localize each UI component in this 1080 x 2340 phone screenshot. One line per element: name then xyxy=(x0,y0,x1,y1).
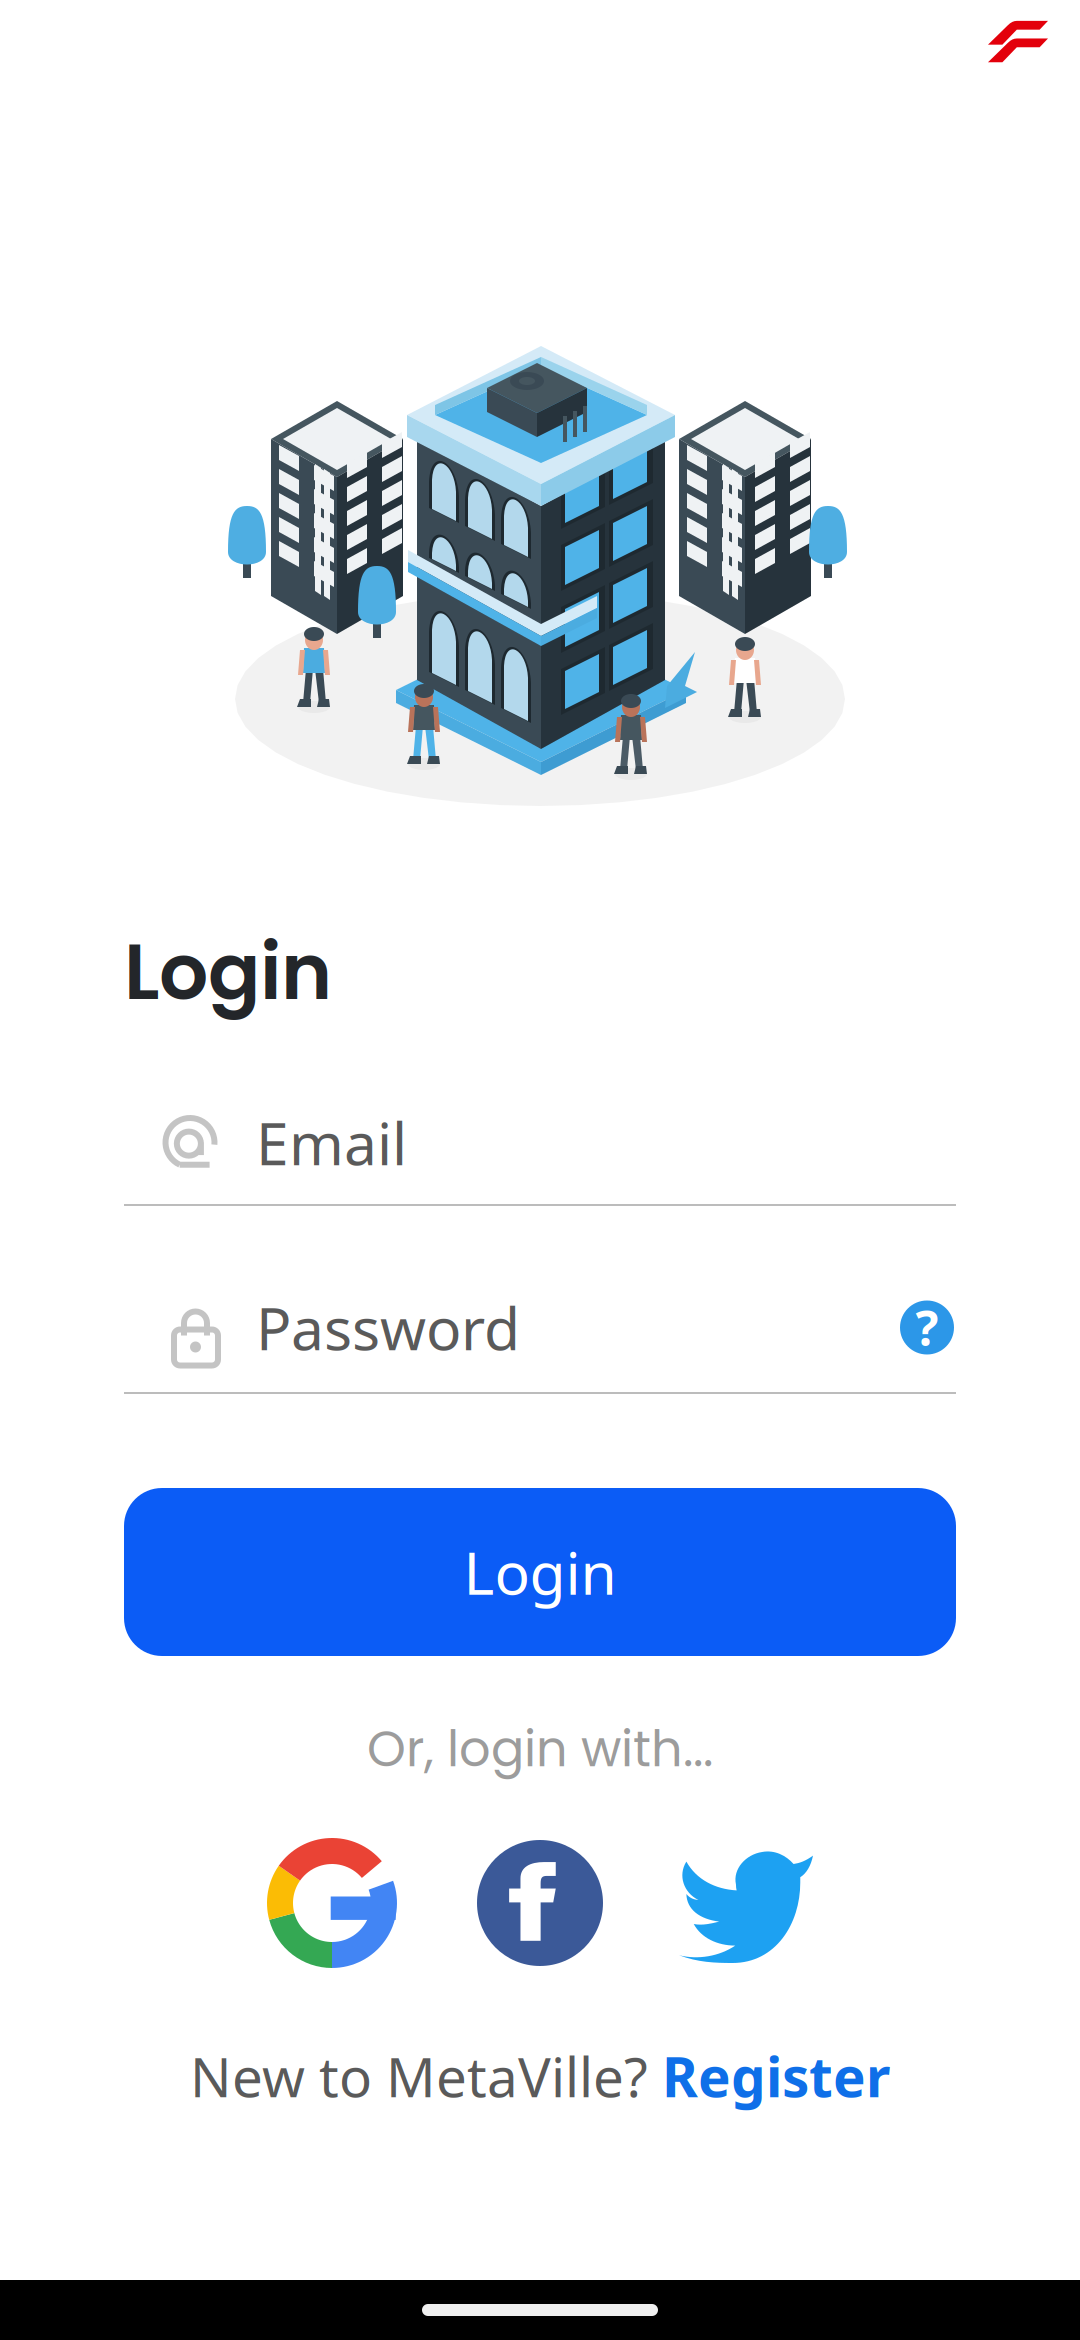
button[interactable]: Continue with Twitter xyxy=(679,1838,813,1968)
staticText: Password xyxy=(256,1288,520,1366)
staticText: Register xyxy=(662,2040,890,2112)
button[interactable]: New to MetaVille? xyxy=(190,2047,890,2105)
staticText: New to MetaVille? xyxy=(190,2040,648,2112)
button[interactable]: Continue with Google xyxy=(267,1838,397,1968)
staticText: Login xyxy=(124,918,332,1026)
button[interactable]: Login xyxy=(124,1488,956,1656)
button[interactable]: MetaVille xyxy=(974,6,1062,78)
staticText: Login xyxy=(463,1533,616,1611)
button[interactable]: Continue with Facebook xyxy=(475,1838,605,1968)
staticText: ? xyxy=(915,1296,938,1359)
staticText: Or, login with... xyxy=(367,1714,713,1784)
staticText: Email xyxy=(256,1103,407,1181)
button[interactable]: Password help xyxy=(898,1298,956,1356)
